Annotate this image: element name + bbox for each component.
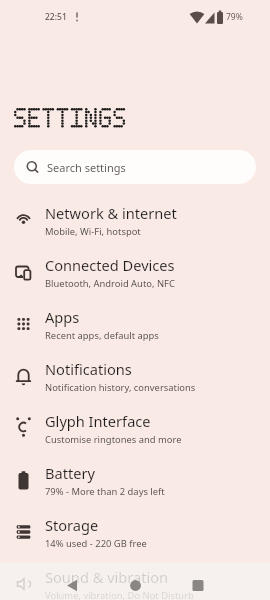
staticText: Volume, vibration, Do Not Disturb — [45, 589, 194, 600]
staticText: Search settings — [47, 160, 126, 175]
staticText: Notification history, conversations — [45, 381, 196, 394]
button[interactable]: Notifications — [0, 350, 270, 402]
button[interactable]: Network & internet — [0, 194, 270, 246]
staticText: Storage — [45, 515, 99, 535]
button[interactable] — [183, 570, 213, 600]
staticText: Mobile, Wi-Fi, hotspot — [45, 225, 141, 238]
staticText: 14% used - 220 GB free — [45, 537, 147, 550]
button[interactable]: Connected Devices — [0, 246, 270, 298]
button[interactable]: Apps — [0, 298, 270, 350]
staticText: Connected Devices — [45, 255, 175, 275]
staticText: Network & internet — [45, 203, 177, 223]
staticText: Customise ringtones and more — [45, 433, 182, 446]
staticText: 22:51 — [45, 11, 67, 23]
button[interactable]: Storage — [0, 506, 270, 558]
button[interactable]: Battery — [0, 454, 270, 506]
staticText: 79% - More than 2 days left — [45, 485, 165, 498]
button[interactable]: Search settings — [14, 150, 256, 184]
staticText: Glyph Interface — [45, 411, 151, 431]
staticText: Battery — [45, 463, 95, 483]
button[interactable] — [120, 570, 150, 600]
button[interactable]: Sound & vibration — [0, 558, 270, 600]
staticText: 79% — [226, 11, 243, 23]
button[interactable]: Glyph Interface — [0, 402, 270, 454]
staticText: Recent apps, default apps — [45, 329, 159, 342]
staticText: Bluetooth, Android Auto, NFC — [45, 277, 175, 290]
staticText: Apps — [45, 307, 80, 327]
staticText: Notifications — [45, 359, 132, 379]
button[interactable] — [57, 570, 87, 600]
staticText: Sound & vibration — [45, 567, 169, 587]
